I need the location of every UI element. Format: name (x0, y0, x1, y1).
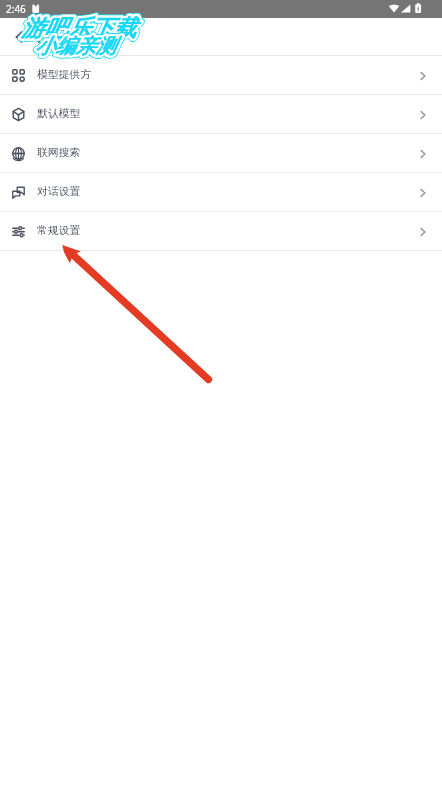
staticText: 常规设置 (37, 224, 81, 238)
staticText: 2:46 (6, 2, 26, 16)
button[interactable]: 模型提供方 (0, 56, 442, 94)
staticText: 模型提供方 (37, 68, 91, 82)
staticText: 小编亲测 (35, 34, 116, 59)
button[interactable]: 联网搜索 (0, 134, 442, 172)
staticText: 小编亲测 (35, 34, 116, 59)
button[interactable]: 对话设置 (0, 173, 442, 211)
staticText: 对话设置 (37, 185, 81, 199)
staticText: 游吧乐下载 (21, 14, 136, 43)
button[interactable]: Back (10, 25, 34, 49)
button[interactable]: 常规设置 (0, 212, 442, 250)
staticText: 游吧乐下载 (21, 14, 136, 43)
staticText: 联网搜索 (37, 146, 81, 160)
staticText: 小编亲测 (35, 34, 116, 59)
button[interactable]: 默认模型 (0, 95, 442, 133)
staticText: 默认模型 (37, 107, 81, 121)
staticText: 设置 (36, 29, 62, 45)
staticText: 游吧乐下载 (21, 14, 136, 43)
